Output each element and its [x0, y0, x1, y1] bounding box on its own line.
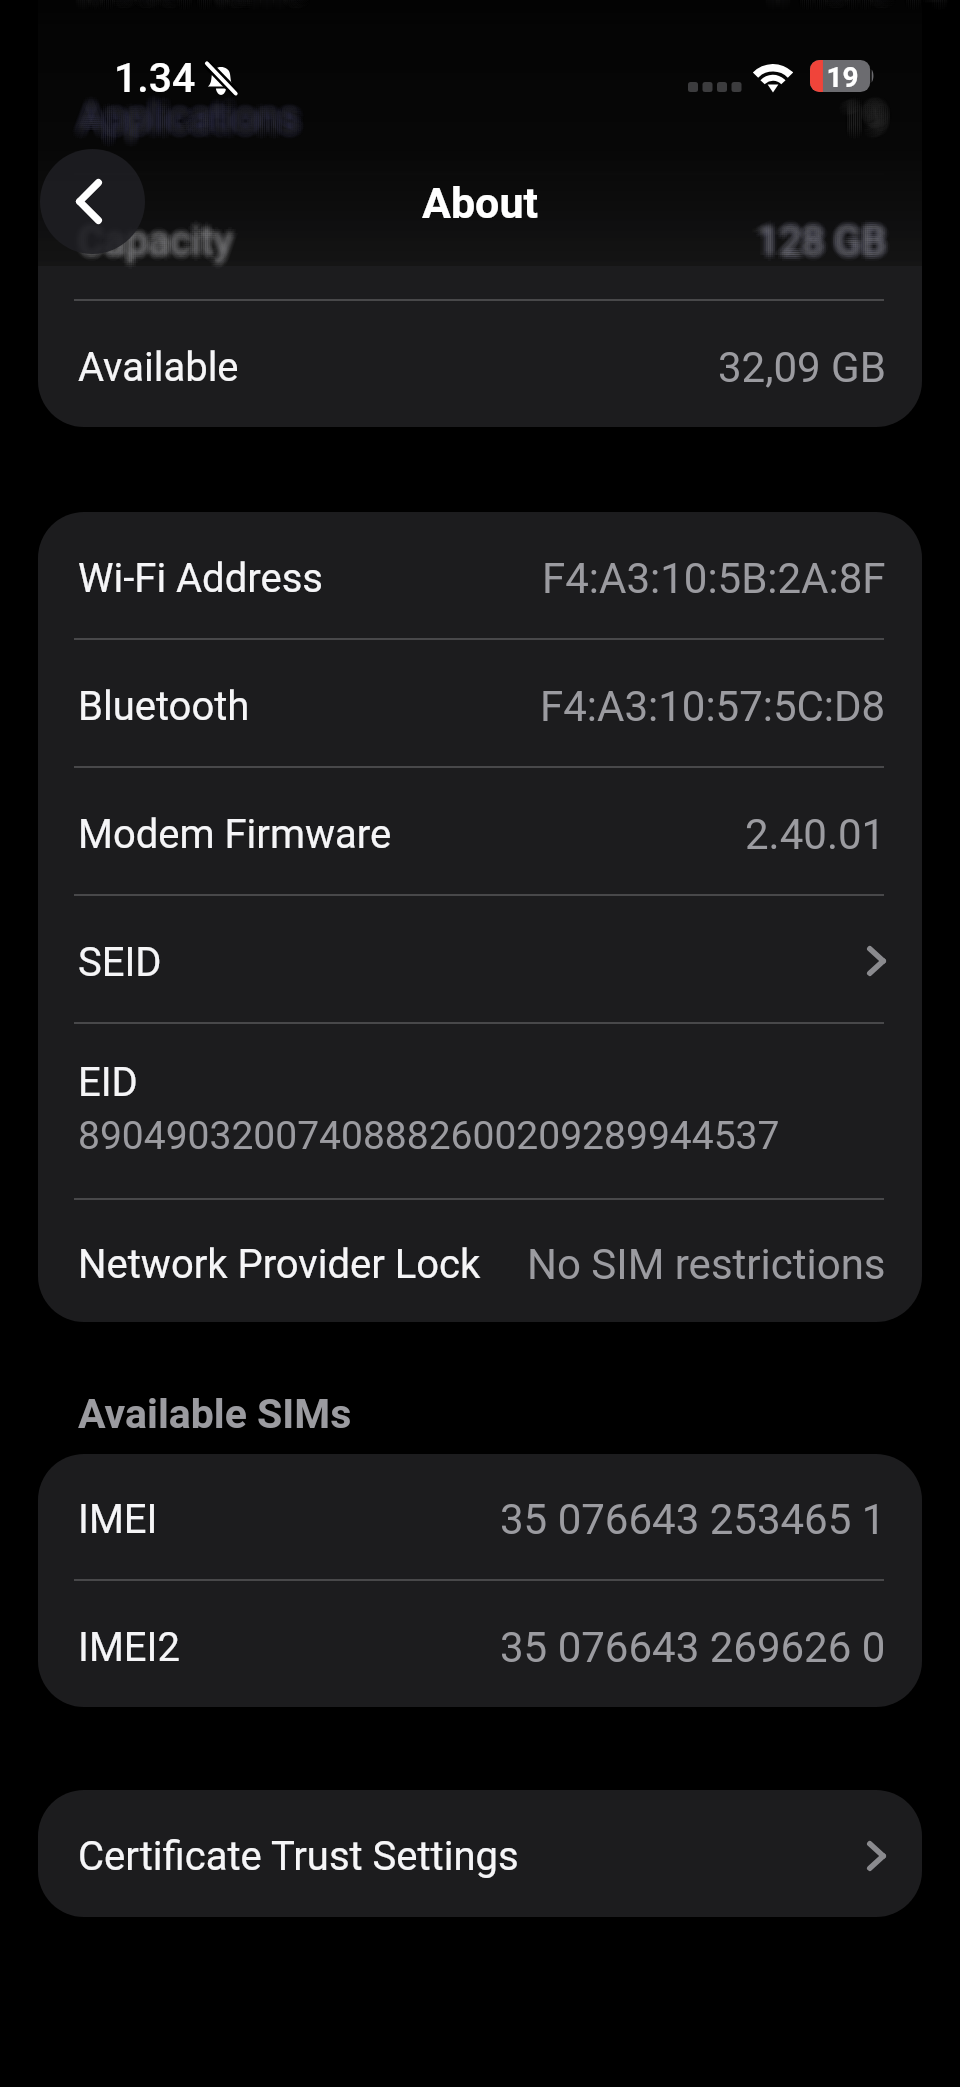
button[interactable]: Capacity [38, 175, 922, 299]
staticText: iPhone 14 [768, 0, 946, 9]
staticText: Applications [78, 95, 300, 142]
button[interactable]: Bluetooth [38, 640, 922, 766]
staticText: Applications [82, 97, 304, 144]
staticText: 19 [842, 97, 887, 144]
staticText: Bluetooth [78, 683, 250, 730]
staticText: 19 [846, 97, 891, 144]
staticText: Applications [78, 97, 300, 144]
staticText: iPhone 14 [768, 0, 946, 7]
staticText: Applications [82, 99, 304, 146]
staticText: Capacity [78, 214, 233, 261]
staticText: iPhone 14 [768, 0, 946, 6]
staticText: Capacity [82, 220, 237, 267]
button[interactable]: Wi-Fi Address [38, 512, 922, 638]
staticText: 19 [846, 95, 891, 142]
staticText: Applications [74, 97, 296, 144]
button[interactable]: IMEI [38, 1454, 922, 1579]
staticText: Applications [80, 89, 302, 136]
staticText: Capacity [78, 218, 233, 265]
staticText: Model Name [76, 0, 304, 11]
staticText: Model Name [78, 0, 306, 11]
staticText: 19 [838, 97, 883, 144]
staticText: Applications [82, 89, 304, 136]
button[interactable]: Applications [38, 49, 922, 173]
staticText: 128 GB [755, 218, 885, 265]
staticText: Model Name [74, 0, 302, 7]
staticText: Applications [78, 102, 300, 149]
staticText: Model Name [82, 0, 310, 11]
staticText: Capacity [74, 220, 229, 267]
staticText: iPhone 14 [764, 0, 942, 11]
staticText: Model Name [80, 0, 308, 9]
staticText: iPhone 14 [770, 0, 948, 13]
staticText: Applications [76, 89, 298, 136]
staticText: Applications [85, 95, 307, 142]
staticText: About [0, 178, 960, 228]
staticText: Network Provider Lock [78, 1241, 481, 1288]
staticText: 19 [838, 93, 883, 140]
staticText: 19 [846, 101, 891, 148]
staticText: Applications [84, 91, 306, 138]
staticText: Capacity [74, 216, 229, 263]
staticText: 19 [846, 89, 891, 136]
staticText: Applications [76, 97, 298, 144]
button[interactable]: IMEI2 [38, 1581, 922, 1707]
staticText: Applications [84, 93, 306, 140]
staticText: Applications [80, 101, 302, 148]
staticText: iPhone 14 [766, 0, 944, 11]
button[interactable]: Certificate Trust Settings [38, 1790, 922, 1917]
staticText: 19 [844, 101, 889, 148]
staticText: Applications [82, 93, 304, 140]
staticText: Model Name [72, 0, 300, 9]
staticText: 19 [835, 95, 880, 142]
staticText: Model Name [78, 0, 306, 9]
button[interactable]: EID [38, 1024, 922, 1198]
button[interactable]: Network Provider Lock [38, 1200, 922, 1322]
staticText: iPhone 14 [770, 0, 948, 9]
staticText: 128 GB [761, 218, 891, 265]
staticText: 1.34 [114, 54, 196, 102]
staticText: 19 [836, 95, 881, 142]
staticText: 19 [840, 89, 885, 136]
staticText: 19 [811, 61, 874, 93]
staticText: Capacity [78, 212, 233, 259]
staticText: 128 GB [757, 220, 887, 267]
staticText: Capacity [84, 218, 239, 265]
staticText: 128 GB [753, 216, 883, 263]
button[interactable]: Back [40, 149, 145, 254]
staticText: 128 GB [759, 220, 889, 267]
staticText: Applications [80, 99, 302, 146]
button[interactable]: Modem Firmware [38, 768, 922, 894]
staticText: Capacity [80, 216, 235, 263]
staticText: Applications [84, 97, 306, 144]
staticText: 128 GB [757, 224, 887, 271]
staticText: Capacity [76, 222, 231, 269]
staticText: 19 [848, 91, 893, 138]
staticText: 19 [842, 102, 887, 149]
staticText: Capacity [78, 224, 233, 271]
button[interactable]: SEID [38, 896, 922, 1022]
staticText: Capacity [78, 216, 233, 263]
staticText: 128 GB [755, 216, 885, 263]
staticText: Applications [84, 99, 306, 146]
staticText: IMEI2 [78, 1624, 180, 1671]
button[interactable]: Available [38, 301, 922, 427]
